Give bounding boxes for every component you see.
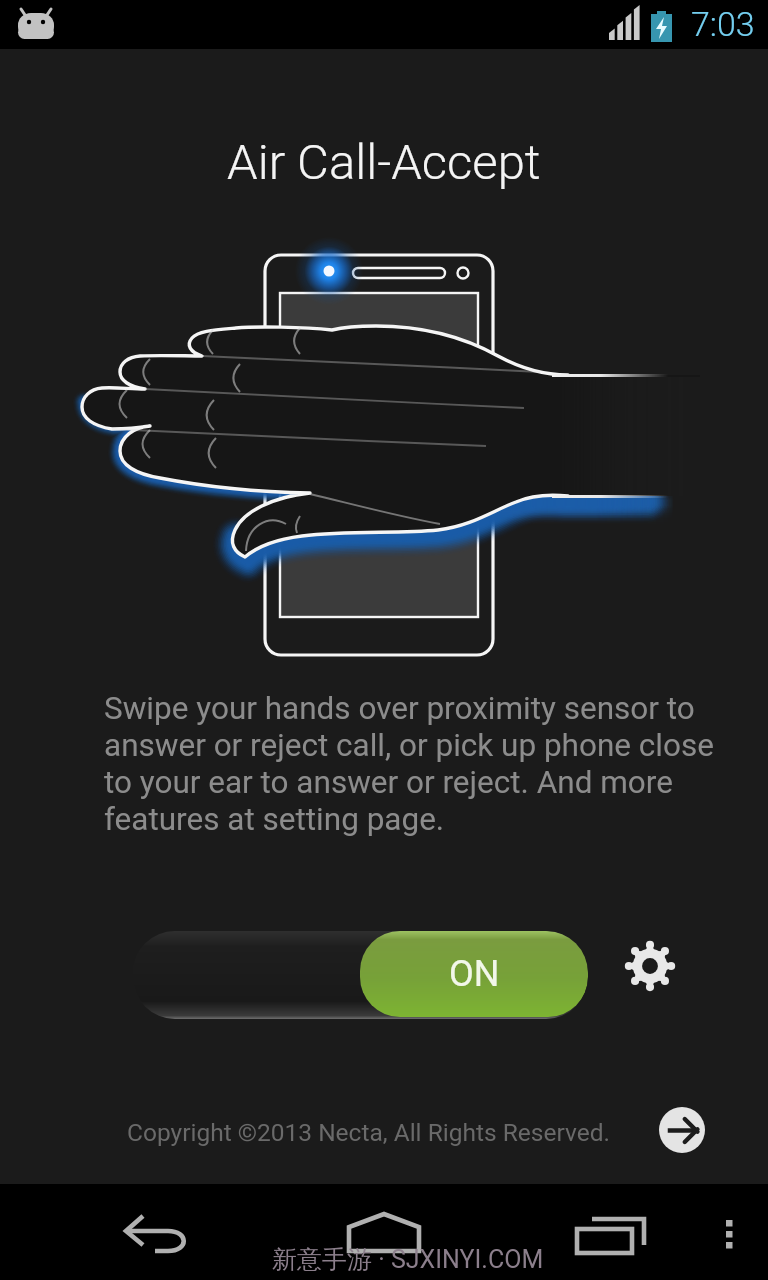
button[interactable]: Next	[659, 1107, 705, 1153]
button[interactable]: Back	[110, 1184, 210, 1280]
staticText: Swipe your hands over proximity sensor t…	[104, 690, 718, 838]
button[interactable]: More options	[699, 1184, 759, 1280]
button[interactable]: ON	[133, 931, 588, 1019]
staticText: 7:03	[691, 4, 755, 44]
button[interactable]: Home	[334, 1184, 434, 1280]
staticText: 新意手游 · SJXINYI.COM	[272, 1244, 544, 1275]
button[interactable]: Settings	[626, 942, 674, 990]
staticText: Copyright ©2013 Necta, All Rights Reserv…	[127, 1118, 610, 1147]
staticText: ON	[449, 953, 500, 995]
button[interactable]: Recent apps	[560, 1184, 660, 1280]
staticText: Air Call-Accept	[227, 134, 541, 191]
